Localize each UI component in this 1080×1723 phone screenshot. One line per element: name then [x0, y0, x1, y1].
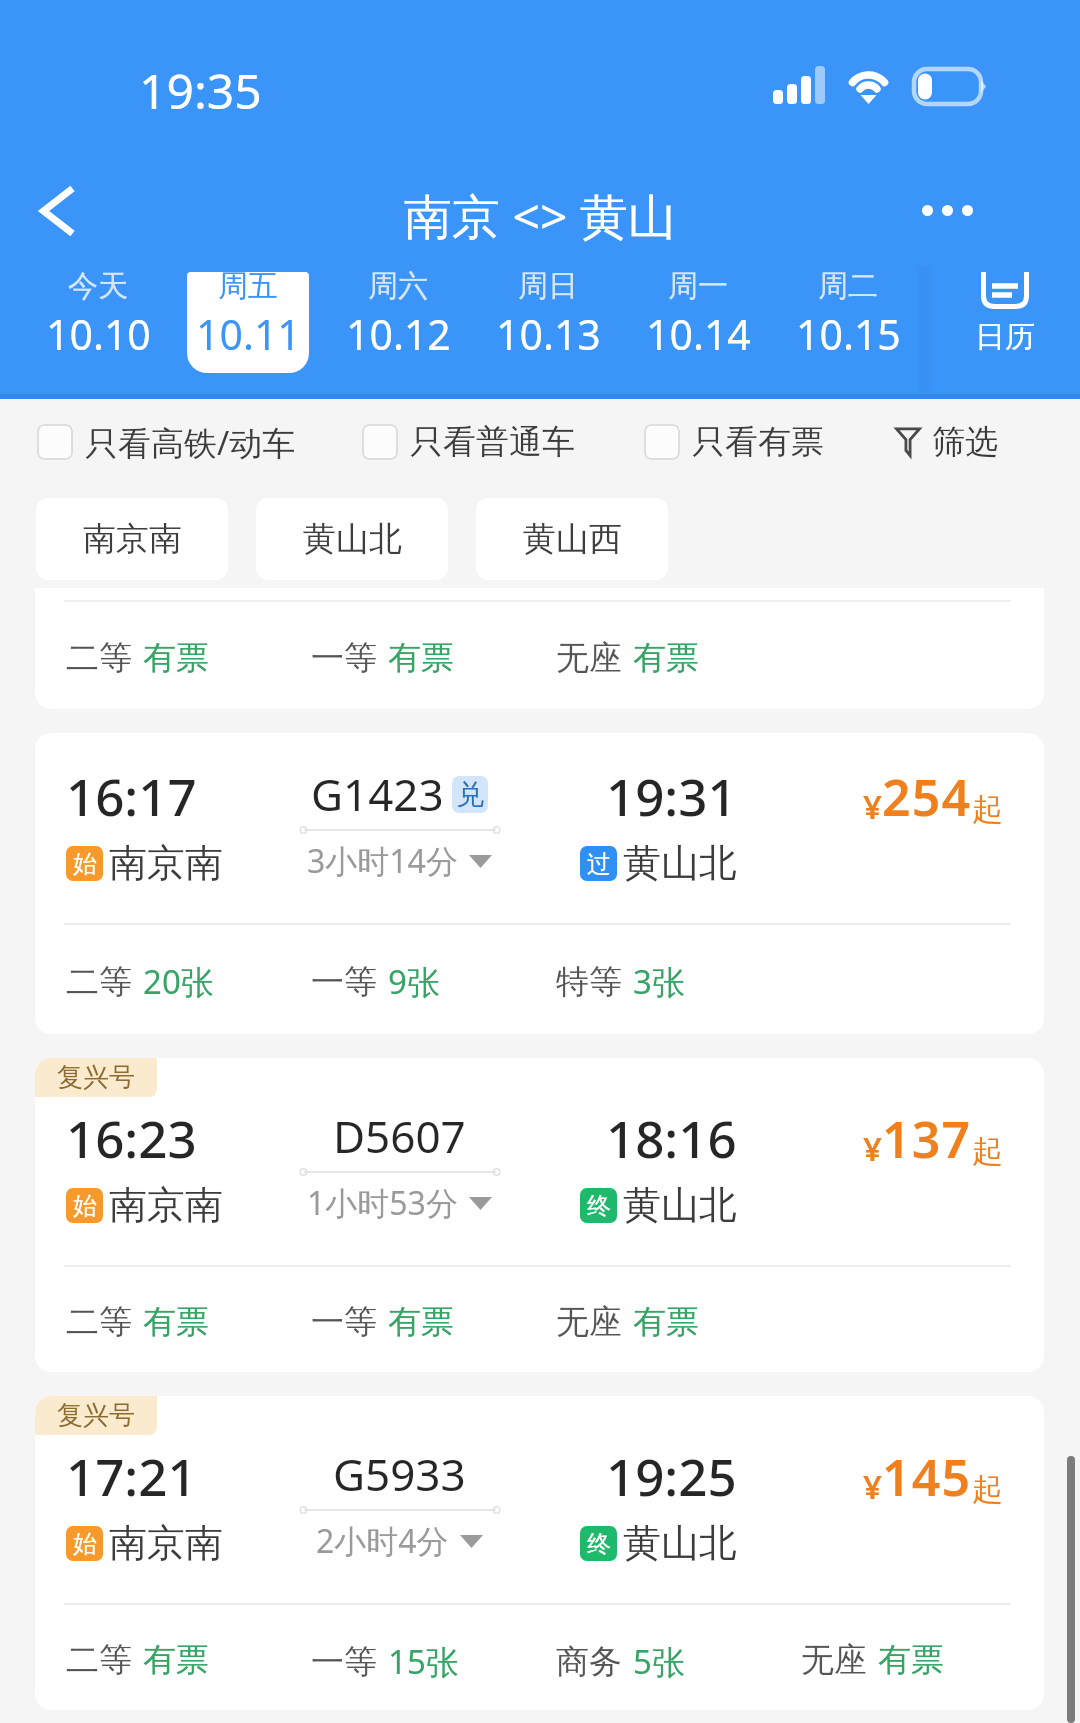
staticText: 3张	[633, 959, 685, 1004]
button[interactable]: Back	[15, 168, 100, 253]
staticText: 始	[73, 1191, 97, 1221]
staticText: 复兴号	[57, 1399, 135, 1432]
button[interactable]: 周六	[323, 256, 473, 396]
staticText: 起	[972, 1470, 1003, 1509]
staticText: 周六	[368, 267, 428, 305]
staticText: ¥	[863, 1464, 882, 1509]
staticText: G1423	[311, 764, 444, 824]
staticText: 南京南	[83, 518, 182, 560]
staticText: 10.14	[646, 306, 751, 362]
staticText: 特等	[556, 961, 622, 1003]
staticText: 5张	[633, 1639, 685, 1684]
staticText: 复兴号	[57, 1061, 135, 1094]
staticText: 黄山西	[523, 518, 622, 560]
staticText: 南京南	[109, 839, 223, 887]
staticText: 无座	[556, 637, 622, 679]
button[interactable]: 南京南	[36, 498, 228, 580]
staticText: 20张	[143, 959, 214, 1004]
staticText: 145	[882, 1443, 972, 1511]
button[interactable]: 只看有票	[644, 408, 824, 476]
staticText: ¥	[863, 1126, 882, 1171]
staticText: 有票	[633, 637, 699, 679]
staticText: 10.15	[796, 306, 901, 362]
button[interactable]: 复兴号	[35, 1058, 1044, 1372]
staticText: 有票	[388, 637, 454, 679]
staticText: 终	[587, 1191, 611, 1221]
staticText: 1小时53分	[307, 1181, 458, 1225]
button[interactable]: 只看高铁/动车	[37, 408, 296, 476]
staticText: 有票	[143, 1301, 209, 1343]
staticText: 有票	[878, 1639, 944, 1681]
staticText: 10.13	[496, 306, 601, 362]
staticText: 起	[972, 790, 1003, 829]
staticText: 兑	[456, 777, 484, 812]
staticText: D5607	[333, 1106, 466, 1166]
staticText: 始	[73, 849, 97, 879]
button[interactable]: 黄山北	[256, 498, 448, 580]
staticText: 今天	[68, 267, 128, 305]
staticText: 10.12	[346, 306, 451, 362]
staticText: 只看高铁/动车	[85, 420, 296, 465]
staticText: 无座	[801, 1639, 867, 1681]
button[interactable]: Calendar	[930, 256, 1080, 396]
staticText: 周五	[218, 267, 278, 305]
staticText: 有票	[143, 1639, 209, 1681]
staticText: 周二	[818, 267, 878, 305]
button[interactable]: 复兴号	[35, 1396, 1044, 1710]
button[interactable]: 周日	[473, 256, 623, 396]
button[interactable]: 黄山西	[476, 498, 668, 580]
staticText: 19:25	[606, 1441, 737, 1510]
staticText: 无座	[556, 1301, 622, 1343]
staticText: 一等	[311, 637, 377, 679]
staticText: 16:23	[66, 1103, 197, 1172]
staticText: 只看普通车	[410, 421, 575, 463]
button[interactable]: 只看普通车	[362, 408, 575, 476]
staticText: 周一	[668, 267, 728, 305]
staticText: 18:16	[606, 1103, 737, 1172]
staticText: 南京南	[109, 1181, 223, 1229]
staticText: 二等	[66, 961, 132, 1003]
staticText: 15张	[388, 1639, 459, 1684]
staticText: 南京 <> 黄山	[404, 183, 676, 249]
button[interactable]: 今天	[23, 256, 173, 396]
button[interactable]: 筛选	[895, 408, 998, 476]
staticText: 始	[73, 1529, 97, 1559]
staticText: 19:35	[139, 58, 262, 123]
staticText: 一等	[311, 1301, 377, 1343]
staticText: 筛选	[932, 421, 998, 463]
staticText: 起	[972, 1132, 1003, 1171]
button[interactable]: More options	[882, 168, 1012, 253]
staticText: 南京南	[109, 1519, 223, 1567]
staticText: 254	[882, 763, 972, 831]
staticText: G5933	[333, 1444, 466, 1504]
staticText: 9张	[388, 959, 440, 1004]
staticText: 商务	[556, 1641, 622, 1683]
staticText: 日历	[975, 318, 1035, 356]
staticText: 二等	[66, 637, 132, 679]
button[interactable]: 周二	[773, 256, 923, 396]
staticText: 过	[587, 849, 611, 879]
staticText: 一等	[311, 1641, 377, 1683]
button[interactable]: 16:17	[35, 733, 1044, 1034]
staticText: ¥	[863, 784, 882, 829]
staticText: 二等	[66, 1301, 132, 1343]
staticText: 10.10	[46, 306, 151, 362]
staticText: 有票	[388, 1301, 454, 1343]
staticText: 黄山北	[623, 1181, 737, 1229]
staticText: 黄山北	[303, 518, 402, 560]
button[interactable]: 二等	[35, 588, 1044, 709]
staticText: 137	[882, 1105, 972, 1173]
button[interactable]: 周一	[623, 256, 773, 396]
staticText: 19:31	[606, 761, 737, 830]
staticText: 黄山北	[623, 1519, 737, 1567]
staticText: 有票	[143, 637, 209, 679]
staticText: 周日	[518, 267, 578, 305]
button[interactable]: 周五	[173, 256, 323, 396]
staticText: 16:17	[66, 761, 197, 830]
staticText: 2小时4分	[316, 1519, 449, 1563]
staticText: 二等	[66, 1639, 132, 1681]
staticText: 3小时14分	[307, 839, 458, 883]
staticText: 只看有票	[692, 421, 824, 463]
staticText: 10.11	[196, 306, 301, 362]
staticText: 黄山北	[623, 839, 737, 887]
